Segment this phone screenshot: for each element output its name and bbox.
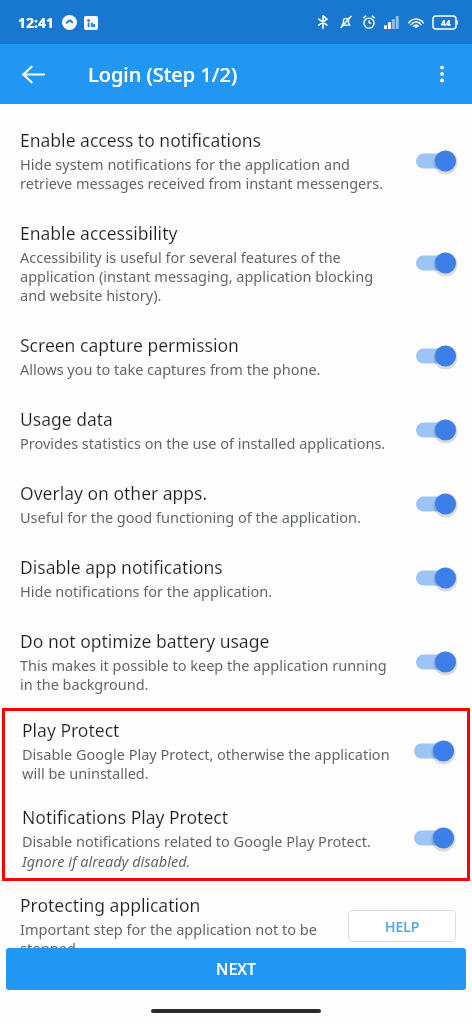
staticText: Hide system notifications for the applic… <box>20 154 402 193</box>
button[interactable]: Toggle <box>406 821 462 855</box>
button[interactable]: Protecting application <box>0 881 472 948</box>
staticText: Screen capture permission <box>20 333 239 357</box>
staticText: Hide notifications for the application. <box>20 581 273 601</box>
staticText: 12:41 <box>18 13 54 32</box>
button[interactable]: Toggle <box>408 144 464 178</box>
button[interactable]: Toggle <box>408 246 464 280</box>
button[interactable]: Back <box>10 51 56 97</box>
button[interactable]: Disable app notifications <box>0 541 472 615</box>
staticText: Notifications Play Protect <box>22 805 228 829</box>
staticText: Overlay on other apps. <box>20 481 208 505</box>
staticText: Accessibility is useful for several feat… <box>20 247 402 305</box>
button[interactable]: Toggle <box>408 413 464 447</box>
staticText: This makes it possible to keep the appli… <box>20 655 402 694</box>
button[interactable]: Enable access to notifications <box>0 114 472 207</box>
staticText: Enable access to notifications <box>20 128 261 152</box>
button[interactable]: More options <box>420 52 464 96</box>
button[interactable]: Toggle <box>408 487 464 521</box>
button[interactable]: Play Protect <box>2 708 470 795</box>
staticText: Useful for the good functioning of the a… <box>20 507 361 527</box>
button[interactable]: Toggle <box>408 339 464 373</box>
staticText: 44 <box>441 17 451 29</box>
button[interactable]: Toggle <box>408 561 464 595</box>
button[interactable]: NEXT <box>6 948 466 990</box>
staticText: Allows you to take captures from the pho… <box>20 359 321 379</box>
staticText: Disable app notifications <box>20 555 223 579</box>
button[interactable]: Usage data <box>0 393 472 467</box>
staticText: Enable accessibility <box>20 221 178 245</box>
staticText: Protecting application <box>20 893 201 917</box>
staticText: Disable notifications related to Google … <box>22 831 371 851</box>
staticText: NEXT <box>216 958 257 980</box>
button[interactable]: Enable accessibility <box>0 207 472 319</box>
staticText: Important step for the application not t… <box>20 919 338 948</box>
staticText: Play Protect <box>22 718 120 742</box>
staticText: Usage data <box>20 407 113 431</box>
staticText: Disable Google Play Protect, otherwise t… <box>22 744 400 783</box>
staticText: Login (Step 1/2) <box>88 61 238 88</box>
staticText: Ignore if already disabled. <box>22 851 191 871</box>
button[interactable]: Screen capture permission <box>0 319 472 393</box>
button[interactable]: HELP <box>348 910 456 942</box>
staticText: HELP <box>385 917 420 936</box>
button[interactable]: Toggle <box>408 645 464 679</box>
button[interactable]: Overlay on other apps. <box>0 467 472 541</box>
button[interactable]: Do not optimize battery usage <box>0 615 472 708</box>
staticText: Do not optimize battery usage <box>20 629 270 653</box>
staticText: Provides statistics on the use of instal… <box>20 433 386 453</box>
button[interactable]: Notifications Play Protect <box>2 795 470 881</box>
button[interactable]: Toggle <box>406 734 462 768</box>
